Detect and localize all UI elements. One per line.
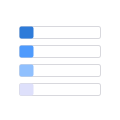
button[interactable]: Level 1 xyxy=(19,26,101,39)
button[interactable]: Level 2 xyxy=(19,45,101,58)
button[interactable]: Level 3 xyxy=(19,64,101,77)
button[interactable]: Level 4 xyxy=(19,83,101,96)
